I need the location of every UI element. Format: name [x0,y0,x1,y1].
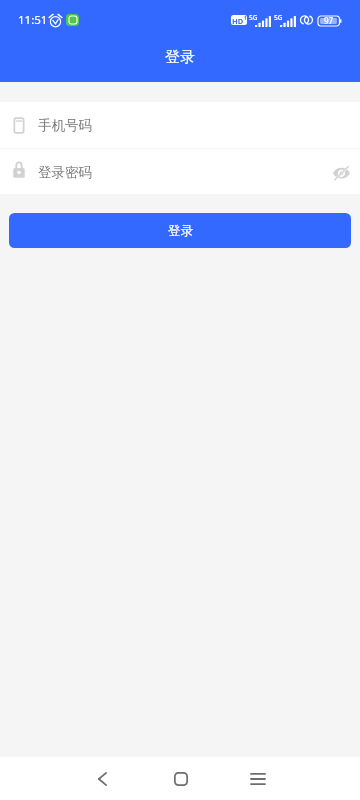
button[interactable]: 登录密码 [0,149,360,194]
button[interactable]: 登录 [9,213,351,248]
staticText: 1 [244,15,247,22]
button[interactable]: Show password [322,151,360,194]
staticText: 5G [249,13,258,22]
staticText: 登录 [165,48,195,67]
staticText: 登录密码 [38,164,92,181]
staticText: 97 [324,15,334,26]
staticText: 手机号码 [38,117,92,134]
button[interactable]: 手机号码 [0,102,360,148]
staticText: 5G [274,13,283,22]
button[interactable]: Recent apps [238,757,277,800]
staticText: 11:51 [18,12,48,28]
button[interactable]: Back [83,757,122,800]
staticText: HD [232,16,244,25]
button[interactable]: Home [161,757,200,800]
staticText: 登录 [168,223,193,239]
